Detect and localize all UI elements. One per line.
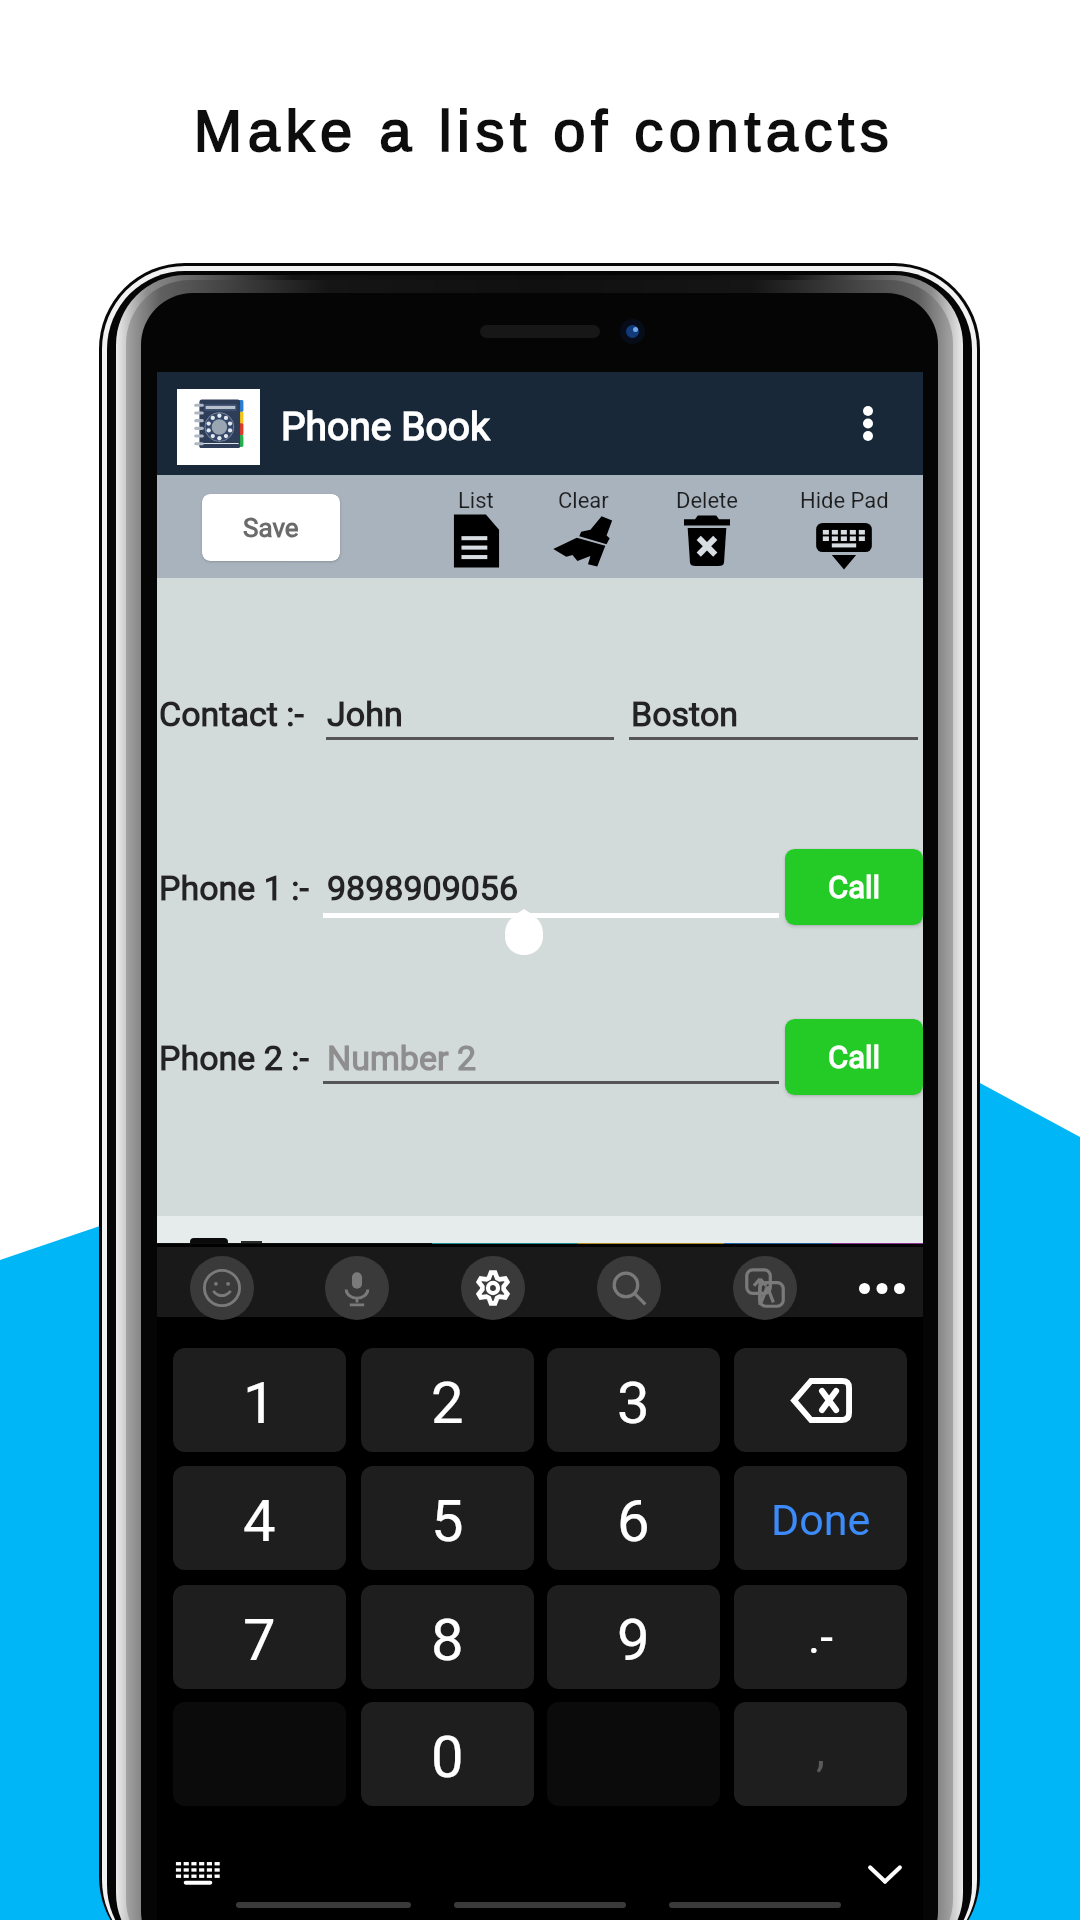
button[interactable]: Done: [734, 1466, 907, 1570]
button[interactable]: Hide keyboard: [866, 1860, 904, 1890]
staticText: 5: [431, 1487, 464, 1555]
staticText: Done: [771, 1495, 871, 1545]
staticText: Phone Book: [281, 404, 490, 450]
button[interactable]: Hide Pad: [774, 475, 914, 578]
staticText: 6: [617, 1487, 650, 1555]
button[interactable]: Translate: [733, 1256, 797, 1320]
staticText: 8: [431, 1606, 464, 1674]
staticText: 9: [617, 1606, 650, 1674]
button[interactable]: 3: [547, 1348, 720, 1452]
staticText: Phone 1 :-: [159, 868, 309, 908]
button[interactable]: Settings: [461, 1256, 525, 1320]
button[interactable]: Call: [785, 849, 923, 925]
staticText: Make a list of contacts: [4, 98, 1080, 163]
staticText: Call: [828, 1039, 881, 1075]
button[interactable]: Clear: [513, 475, 653, 578]
staticText: Phone 2 :-: [159, 1038, 309, 1078]
button[interactable]: Backspace: [734, 1348, 907, 1452]
button[interactable]: ,: [734, 1702, 907, 1806]
staticText: 4: [243, 1487, 276, 1555]
button[interactable]: 1: [173, 1348, 346, 1452]
staticText: .-: [808, 1610, 833, 1664]
button[interactable]: .-: [734, 1585, 907, 1689]
staticText: 9898909056: [327, 868, 519, 908]
button[interactable]: Voice input: [325, 1256, 389, 1320]
staticText: List: [458, 488, 494, 514]
staticText: Clear: [558, 488, 609, 514]
staticText: 0: [431, 1723, 464, 1791]
staticText: Hide Pad: [800, 488, 889, 514]
staticText: 1: [243, 1369, 276, 1437]
button[interactable]: Emoji: [190, 1256, 254, 1320]
staticText: Delete: [676, 488, 738, 514]
button[interactable]: Save: [202, 494, 340, 561]
staticText: 7: [243, 1606, 276, 1674]
button[interactable]: More options: [812, 372, 923, 475]
staticText: ,: [816, 1723, 826, 1777]
staticText: 3: [617, 1369, 650, 1437]
button[interactable]: 4: [173, 1466, 346, 1570]
button[interactable]: Delete: [637, 475, 777, 578]
button[interactable]: 9: [547, 1585, 720, 1689]
staticText: John: [327, 694, 403, 734]
staticText: Call: [828, 869, 881, 905]
button[interactable]: 2: [361, 1348, 534, 1452]
button[interactable]: Search: [597, 1256, 661, 1320]
button[interactable]: Call: [785, 1019, 923, 1095]
button[interactable]: 8: [361, 1585, 534, 1689]
button[interactable]: 0: [361, 1702, 534, 1806]
button[interactable]: More: [850, 1256, 914, 1320]
staticText: 2: [431, 1369, 464, 1437]
staticText: Number 2: [327, 1038, 476, 1078]
staticText: Save: [243, 513, 299, 543]
button[interactable]: 6: [547, 1466, 720, 1570]
button[interactable]: List: [406, 475, 546, 578]
staticText: Contact :-: [159, 694, 304, 734]
staticText: Boston: [631, 694, 739, 734]
button[interactable]: 7: [173, 1585, 346, 1689]
button[interactable]: Switch keyboard: [175, 1861, 221, 1887]
button[interactable]: 5: [361, 1466, 534, 1570]
